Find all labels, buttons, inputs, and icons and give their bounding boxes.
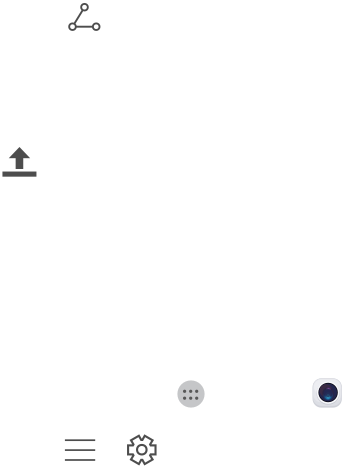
button[interactable]: Camera (312, 378, 342, 408)
button[interactable]: Share (68, 0, 101, 34)
button[interactable]: Apps (177, 380, 205, 408)
button[interactable]: Settings (126, 434, 158, 466)
button[interactable]: Upload (2, 146, 37, 177)
button[interactable]: Menu (64, 439, 95, 460)
